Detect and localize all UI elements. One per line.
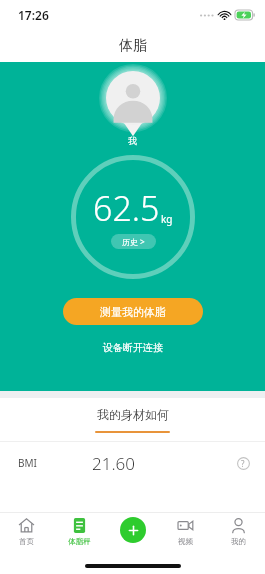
button[interactable]: 我的身材如何 [95, 407, 170, 433]
staticText: ? [241, 458, 245, 469]
staticText: 我 [128, 135, 137, 146]
button[interactable]: Add [120, 517, 146, 543]
staticText: 测量我的体脂 [100, 305, 166, 319]
button[interactable]: 体脂秤 [53, 517, 106, 546]
button[interactable]: BMI help [233, 453, 253, 473]
button[interactable]: 我的 [212, 517, 265, 546]
staticText: kg [161, 212, 173, 226]
button[interactable]: 首页 [0, 517, 53, 546]
staticText: 17:26 [18, 7, 49, 23]
staticText: 历史 > [122, 236, 145, 247]
staticText: 体脂 [119, 37, 147, 55]
staticText: 视频 [178, 537, 193, 546]
staticText: 62.5 [93, 185, 160, 231]
staticText: BMI [18, 456, 37, 470]
staticText: 21.60 [92, 452, 135, 475]
button[interactable]: 历史 > [111, 234, 156, 249]
button[interactable]: 视频 [159, 517, 212, 546]
button[interactable]: 测量我的体脂 [63, 298, 203, 325]
staticText: 我的 [231, 537, 246, 546]
button[interactable]: BMI [0, 442, 265, 484]
button[interactable]: 设备断开连接 [103, 341, 163, 354]
button[interactable]: User profile [106, 71, 160, 131]
staticText: 首页 [19, 537, 34, 546]
staticText: 体脂秤 [68, 537, 91, 546]
staticText: 我的身材如何 [97, 407, 169, 422]
